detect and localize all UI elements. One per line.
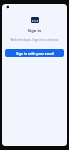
button[interactable]: Sign in with your email	[5, 49, 64, 57]
staticText: Sign in with your email	[16, 51, 54, 56]
other: Front camera	[0, 0, 69, 150]
staticText: Welcome back. Sign in to continue	[5, 38, 64, 42]
staticText: Sign in	[2, 28, 67, 33]
